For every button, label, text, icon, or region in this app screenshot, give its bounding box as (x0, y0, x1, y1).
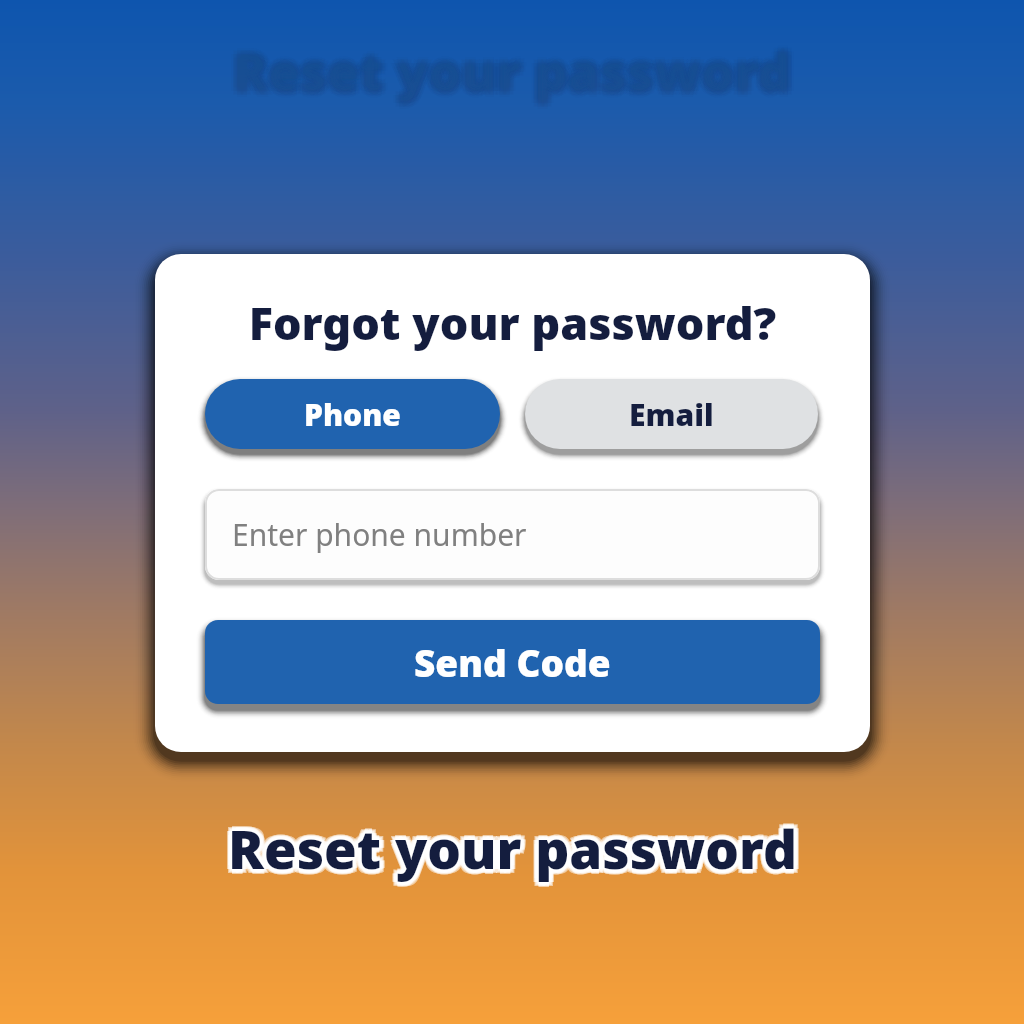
staticText: Reset your password (233, 29, 792, 100)
staticText: Reset your password (228, 809, 797, 879)
staticText: Reset your password (236, 32, 795, 103)
staticText: Reset your password (234, 34, 793, 105)
staticText: Reset your password (232, 36, 791, 107)
staticText: Reset your password (233, 812, 802, 882)
staticText: Reset your password (233, 39, 792, 110)
staticText: Reset your password (224, 816, 793, 886)
staticText: Reset your password (226, 810, 795, 880)
button[interactable]: Email (525, 379, 818, 449)
staticText: Reset your password (237, 31, 796, 102)
staticText: Reset your password (230, 814, 799, 884)
staticText: Reset your password (225, 815, 794, 885)
staticText: Reset your password (224, 808, 793, 878)
staticText: Reset your password (229, 39, 788, 110)
staticText: Reset your password (234, 36, 793, 107)
staticText: Reset your password (227, 35, 786, 106)
staticText: Reset your password (225, 812, 794, 882)
staticText: Email (629, 394, 714, 435)
staticText: Reset your password (239, 35, 798, 106)
staticText: Reset your password (230, 810, 799, 880)
staticText: Reset your password (228, 812, 797, 882)
staticText: Reset your password (228, 810, 797, 880)
staticText: Reset your password (223, 812, 792, 882)
staticText: Reset your password (228, 816, 797, 886)
staticText: Reset your password (231, 815, 800, 885)
staticText: Reset your password (233, 33, 792, 104)
staticText: Reset your password (229, 811, 798, 881)
staticText: Reset your password (226, 812, 795, 882)
staticText: Reset your password (237, 39, 796, 110)
staticText: Reset your password (225, 809, 794, 879)
staticText: Reset your password (230, 812, 799, 882)
staticText: Reset your password (233, 41, 792, 112)
staticText: Reset your password (236, 38, 795, 109)
staticText: Reset your password (229, 813, 798, 883)
staticText: Reset your password (232, 816, 801, 886)
staticText: Enter phone number (232, 514, 527, 555)
staticText: Reset your password (232, 812, 801, 882)
button[interactable]: Phone (205, 379, 500, 449)
staticText: Reset your password (228, 817, 797, 887)
staticText: Reset your password (227, 813, 796, 883)
staticText: Forgot your password? (155, 292, 870, 353)
staticText: Phone (304, 394, 401, 435)
staticText: Reset your password (228, 814, 797, 884)
staticText: Reset your password (232, 34, 791, 105)
staticText: Reset your password (230, 38, 789, 109)
staticText: Reset your password (226, 814, 795, 884)
staticText: Reset your password (228, 815, 797, 885)
staticText: Send Code (414, 637, 611, 687)
staticText: Reset your password (229, 35, 788, 106)
staticText: Reset your password (233, 37, 792, 108)
staticText: Reset your password (231, 809, 800, 879)
staticText: Reset your password (233, 31, 792, 102)
staticText: Reset your password (231, 35, 790, 106)
staticText: Reset your password (230, 32, 789, 103)
staticText: Reset your password (237, 35, 796, 106)
staticText: Reset your password (228, 807, 797, 877)
staticText: Reset your password (224, 812, 793, 882)
button[interactable]: Enter phone number (205, 489, 820, 580)
staticText: Reset your password (229, 31, 788, 102)
other: Reset your password (0, 812, 1024, 882)
staticText: Reset your password (232, 808, 801, 878)
staticText: Reset your password (228, 808, 797, 878)
staticText: Reset your password (227, 811, 796, 881)
button[interactable]: Send Code (205, 620, 820, 704)
staticText: Reset your password (231, 812, 800, 882)
staticText: Reset your password (235, 35, 794, 106)
